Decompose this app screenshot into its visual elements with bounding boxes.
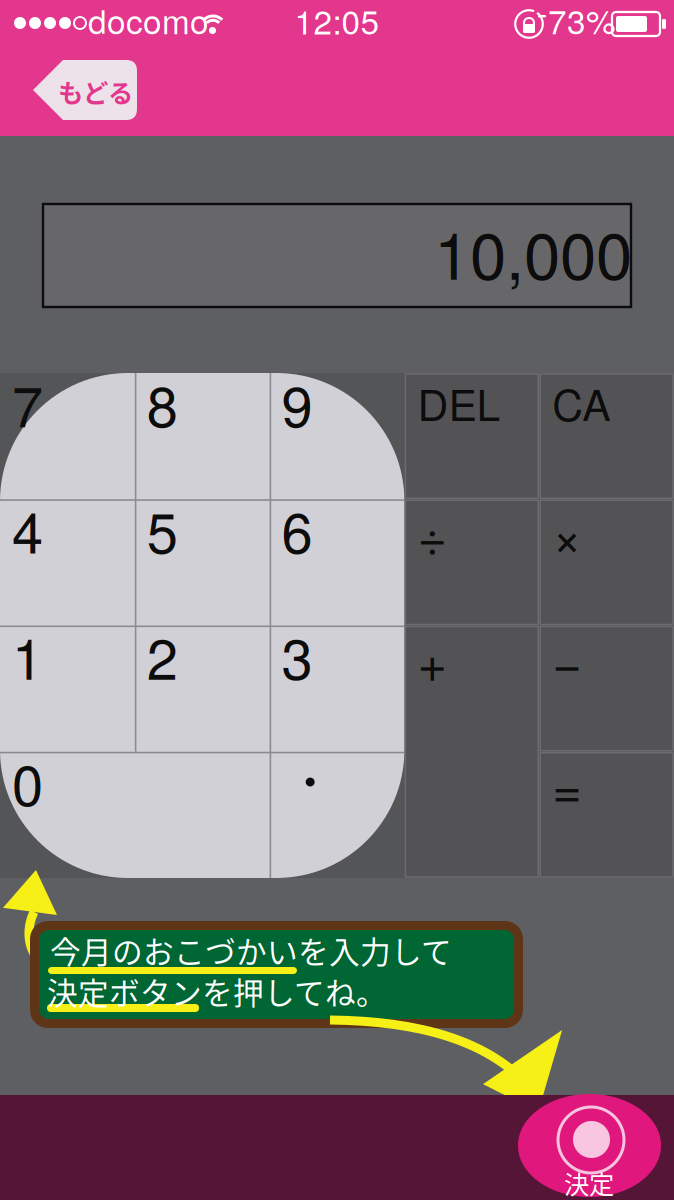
button[interactable]: 6 xyxy=(270,499,404,625)
staticText: 1 xyxy=(12,615,43,696)
staticText: docomo xyxy=(88,0,209,44)
staticText: 決定ボタンを押してね。 xyxy=(47,969,387,1013)
button[interactable]: 3 xyxy=(270,625,404,752)
staticText: + xyxy=(417,623,447,696)
staticText: 73% xyxy=(548,0,616,44)
staticText: 6 xyxy=(282,489,313,569)
staticText: 9 xyxy=(282,363,313,443)
staticText: 5 xyxy=(147,489,178,569)
staticText: 8 xyxy=(147,363,178,443)
button[interactable]: − xyxy=(540,626,673,751)
button[interactable]: 4 xyxy=(0,499,135,625)
staticText: × xyxy=(552,497,582,570)
staticText: DEL xyxy=(417,372,500,433)
button[interactable]: 7 xyxy=(0,373,135,499)
button[interactable]: 決定 xyxy=(518,1094,661,1197)
staticText: = xyxy=(552,750,582,822)
button[interactable]: 5 xyxy=(135,499,270,625)
button[interactable]: × xyxy=(540,500,673,624)
button[interactable]: DEL xyxy=(405,374,538,498)
staticText: 決定 xyxy=(564,1165,614,1200)
button[interactable]: CA xyxy=(540,374,673,498)
button[interactable]: + xyxy=(405,626,538,877)
button[interactable]: 1 xyxy=(0,625,135,752)
button[interactable]: 9 xyxy=(270,373,404,499)
staticText: 12:05 xyxy=(294,0,379,44)
button[interactable]: ・ xyxy=(270,752,404,878)
button[interactable]: 0 xyxy=(0,752,270,878)
button[interactable]: ÷ xyxy=(405,500,538,624)
staticText: もどる xyxy=(58,73,133,110)
staticText: 3 xyxy=(282,615,313,696)
staticText: CA xyxy=(552,372,610,433)
staticText: 7 xyxy=(12,363,43,443)
button[interactable]: 8 xyxy=(135,373,270,499)
staticText: − xyxy=(552,623,582,696)
staticText: ÷ xyxy=(417,497,447,570)
staticText: 0 xyxy=(12,742,43,822)
button[interactable]: もどる xyxy=(33,60,137,120)
staticText: 10,000 xyxy=(434,205,632,298)
button[interactable]: 2 xyxy=(135,625,270,752)
button[interactable]: = xyxy=(540,753,673,877)
staticText: 2 xyxy=(147,615,178,696)
staticText: 今月のおこづかいを入力して xyxy=(50,928,452,972)
staticText: 4 xyxy=(12,489,43,569)
staticText: ・ xyxy=(282,748,338,818)
